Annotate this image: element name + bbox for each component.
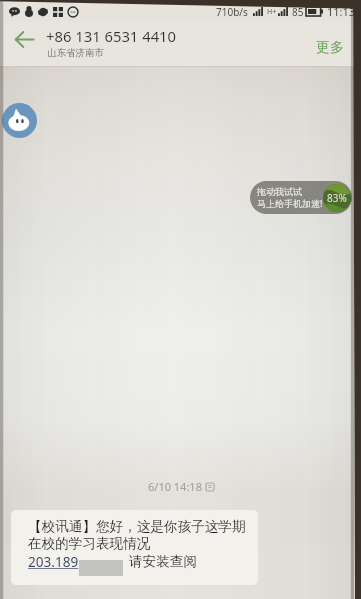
staticText: 11:13 — [327, 4, 356, 19]
staticText: H+ — [267, 7, 277, 17]
staticText: 85 — [292, 5, 304, 19]
staticText: 710b/s — [216, 5, 248, 19]
staticText: 马上给手机加速! — [257, 197, 323, 209]
button[interactable]: Contact avatar — [2, 103, 37, 138]
staticText: 拖动我试试 — [257, 186, 302, 197]
staticText: 在校的学习表现情况 — [28, 535, 151, 552]
staticText: 请安装查阅 — [129, 553, 197, 570]
staticText: 6/10 14:18 — [148, 479, 202, 494]
button[interactable]: 拖动我试试 — [250, 181, 352, 214]
staticText: 更多 — [316, 39, 344, 57]
button[interactable]: 更多 — [300, 22, 361, 67]
staticText: +86 131 6531 4410 — [46, 26, 177, 46]
staticText: 203.189 — [28, 552, 79, 571]
staticText: 山东省济南市 — [47, 47, 104, 59]
staticText: 【校讯通】您好，这是你孩子这学期 — [28, 518, 246, 535]
button[interactable]: Back — [5, 17, 43, 62]
button[interactable]: 【校讯通】您好，这是你孩子这学期 — [11, 510, 258, 585]
staticText: 83% — [327, 191, 347, 205]
